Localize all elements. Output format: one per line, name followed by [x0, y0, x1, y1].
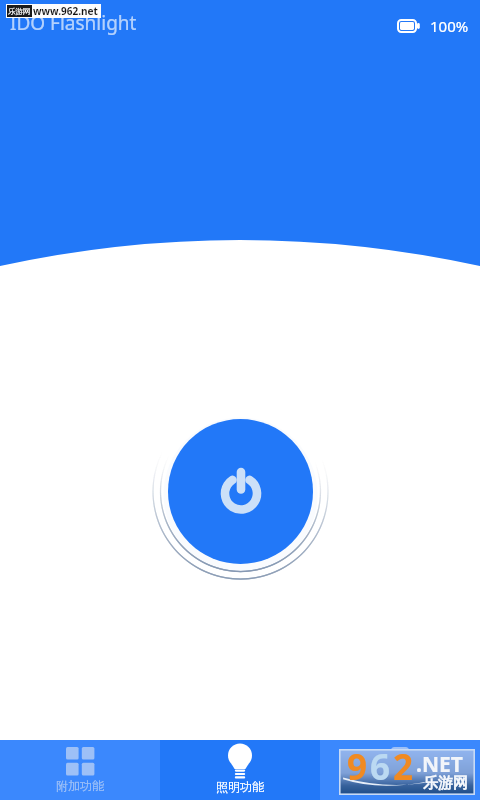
staticText: IDO Flashlight	[10, 10, 137, 36]
staticText: 照明功能	[216, 779, 264, 794]
staticText: 9	[347, 743, 370, 789]
staticText: 乐游网	[8, 7, 31, 16]
staticText: 6	[370, 743, 393, 789]
other: Battery 100 percent	[397, 16, 469, 36]
button[interactable]: 照明功能	[160, 740, 320, 800]
staticText: www.962.net	[33, 4, 98, 18]
button[interactable]: Turn flashlight on	[168, 419, 313, 564]
staticText: .NET	[416, 750, 463, 779]
button[interactable]: 附加功能	[0, 740, 160, 800]
staticText: 100%	[430, 16, 469, 36]
staticText: 更多功能	[376, 778, 424, 793]
button[interactable]: 更多功能	[320, 740, 480, 800]
staticText: 乐游网	[423, 774, 468, 793]
staticText: 2	[393, 743, 416, 789]
staticText: 附加功能	[56, 778, 104, 793]
